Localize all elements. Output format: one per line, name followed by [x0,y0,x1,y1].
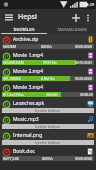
button[interactable]: Stop download [0,34,96,50]
button[interactable]: More options [82,12,93,23]
button[interactable]: Stop download [0,146,96,162]
button[interactable]: Pause download [0,66,96,82]
staticText: 301.7M/854 [3,77,21,81]
staticText: 11:29 [84,2,95,7]
staticText: TAMAMLANAN [57,27,87,32]
staticText: 840 K/s [42,157,53,161]
staticText: 00:19:35:57 [75,61,93,65]
staticText: 4 554 K/s [41,77,55,81]
staticText: Launcher.apk [13,100,45,107]
button[interactable]: Pause download [2,84,10,92]
button[interactable]: TAMAMLANAN [48,25,96,33]
button[interactable]: Add new download [69,11,82,24]
staticText: 811.5m/755m [3,93,24,97]
staticText: 00:33:00:03 [75,77,93,81]
button[interactable]: Stop download [2,36,10,44]
button[interactable]: Pause download [2,52,10,60]
staticText: 00:00:00:00 [75,45,93,49]
staticText: 2'615 K/s [43,61,57,65]
staticText: 02:00:29 [80,93,93,97]
staticText: Hepsi [18,12,37,22]
button[interactable]: Pause download [0,114,96,130]
button[interactable]: Pause download [2,116,10,124]
staticText: Internal.png [13,132,43,139]
staticText: 355.5M/755M [3,61,24,65]
button[interactable]: Pause download [0,98,96,114]
staticText: İNDİRİLEN [13,27,35,32]
staticText: Movie 2.mp4 [13,68,44,75]
button[interactable]: İNDİRİLEN [0,25,48,33]
button[interactable]: Open navigation drawer [3,11,15,23]
staticText: Movie 1.mp4 [13,52,44,59]
button[interactable]: Pause download [2,132,10,140]
staticText: 00:00:00:00 [75,157,93,161]
staticText: 320+B/s [46,93,59,97]
staticText: Archive.zip [13,36,39,43]
button[interactable]: Pause download [0,82,96,98]
staticText: 06/77,2:84 [3,157,19,161]
button[interactable]: Stop download [2,148,10,156]
button[interactable]: Pause download [2,100,10,108]
button[interactable]: Pause download [0,130,96,146]
staticText: Music.mp3 [13,116,39,123]
staticText: Book.doc [13,148,35,155]
staticText: İçerikte bekliyor [35,140,61,145]
staticText: İçerikte bekliyor [35,124,61,129]
staticText: Movie 3.mp4 [13,84,44,91]
staticText: 68/200M [3,45,17,49]
button[interactable]: Pause download [2,68,10,76]
staticText: İçerikte bekliyor [35,108,61,113]
staticText: 840 K/s [41,45,52,49]
button[interactable]: Pause download [0,50,96,66]
